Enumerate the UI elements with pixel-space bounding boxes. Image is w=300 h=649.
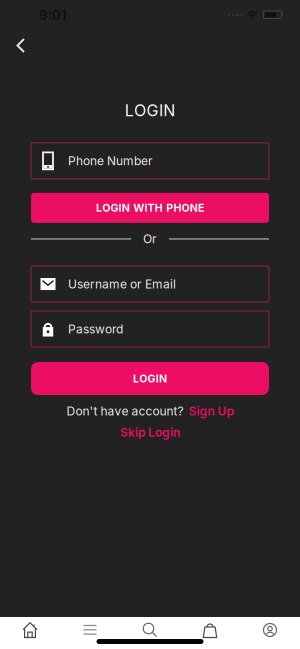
staticText: Phone Number bbox=[68, 154, 153, 168]
button[interactable]: Phone Number bbox=[31, 143, 269, 179]
staticText: Don't have account? bbox=[66, 404, 183, 418]
button[interactable]: LOGIN WITH PHONE bbox=[31, 193, 269, 223]
staticText: Skip Login bbox=[120, 425, 180, 439]
button[interactable]: Skip Login bbox=[120, 425, 180, 439]
button[interactable]: Sign Up bbox=[188, 404, 233, 418]
button[interactable]: Username or Email bbox=[31, 266, 269, 302]
staticText: Password bbox=[68, 322, 123, 336]
button[interactable]: LOGIN bbox=[31, 362, 269, 395]
button[interactable]: Home bbox=[0, 618, 60, 642]
button[interactable]: Search bbox=[120, 618, 180, 642]
staticText: 9:01 bbox=[39, 7, 67, 23]
button[interactable]: Profile bbox=[240, 618, 300, 642]
staticText: Or bbox=[143, 232, 157, 246]
button[interactable]: Password bbox=[31, 311, 269, 347]
staticText: Sign Up bbox=[188, 404, 233, 418]
staticText: LOGIN bbox=[125, 101, 175, 120]
button[interactable]: Cart bbox=[180, 618, 240, 642]
staticText: Username or Email bbox=[68, 277, 176, 291]
button[interactable]: Categories bbox=[60, 618, 120, 642]
staticText: LOGIN WITH PHONE bbox=[96, 202, 204, 214]
button[interactable]: Back bbox=[0, 24, 26, 53]
staticText: LOGIN bbox=[133, 372, 167, 385]
